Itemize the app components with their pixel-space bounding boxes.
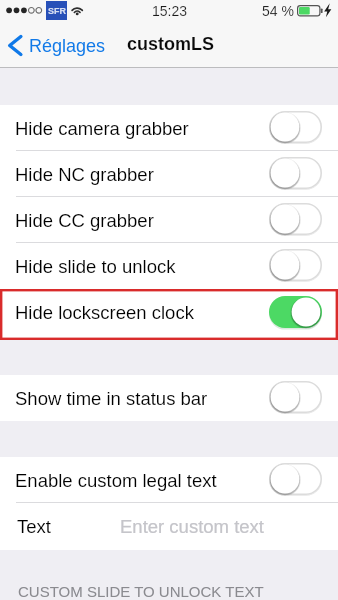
button[interactable]: Toggle off (269, 157, 322, 189)
button[interactable]: Toggle off (269, 111, 322, 143)
staticText: CUSTOM SLIDE TO UNLOCK TEXT (18, 583, 264, 600)
staticText: Text (17, 516, 51, 537)
staticText: Enter custom text (120, 516, 264, 537)
button[interactable]: Enable custom legal text (0, 457, 338, 503)
button[interactable]: Toggle off (269, 463, 322, 495)
button[interactable]: Hide camera grabber (0, 105, 338, 151)
staticText: Hide CC grabber (15, 210, 154, 231)
staticText: 15:23 (152, 3, 188, 19)
staticText: Hide lockscreen clock (15, 302, 194, 323)
button[interactable]: Toggle on (269, 296, 322, 328)
button[interactable]: Toggle off (269, 249, 322, 281)
button[interactable]: Toggle off (269, 203, 322, 235)
button[interactable]: Hide slide to unlock (0, 243, 338, 289)
staticText: Hide slide to unlock (15, 256, 176, 277)
staticText: Hide camera grabber (15, 118, 189, 139)
staticText: Show time in status bar (15, 388, 208, 409)
button[interactable]: Text (0, 503, 338, 550)
button[interactable]: Hide CC grabber (0, 197, 338, 243)
staticText: SFR (48, 6, 66, 16)
button[interactable]: Hide lockscreen clock (0, 289, 338, 340)
button[interactable]: Hide NC grabber (0, 151, 338, 197)
button[interactable]: Réglages (0, 24, 112, 67)
staticText: customLS (127, 34, 215, 54)
button[interactable]: Show time in status bar (0, 375, 338, 421)
button[interactable]: Toggle off (269, 381, 322, 413)
staticText: Enable custom legal text (15, 470, 217, 491)
staticText: Réglages (29, 36, 106, 56)
staticText: 54 % (262, 3, 294, 19)
staticText: Hide NC grabber (15, 164, 154, 185)
